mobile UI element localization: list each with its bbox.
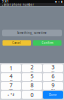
staticText: 9:41 [2,0,9,3]
staticText: 4 [9,73,12,80]
button[interactable]: 5 [22,73,42,81]
staticText: Enter phone number [4,3,34,6]
staticText: 3 [51,64,54,71]
staticText: 7 [9,81,12,89]
staticText: PQRS [9,89,13,90]
staticText: ‹ [2,2,3,7]
staticText: Confirm [42,41,53,45]
button[interactable]: 3 [43,64,63,72]
button[interactable]: 0 [22,91,42,99]
staticText: 5 [30,73,33,80]
staticText: 9 [51,81,54,89]
button[interactable]: Done [43,91,63,99]
staticText: + * # [7,93,14,97]
staticText: 2 [30,64,33,71]
staticText: ▪ ▫ ▮ [55,0,62,3]
button[interactable]: 8 [22,82,42,90]
staticText: ABC [30,71,33,73]
button[interactable]: 4 [1,73,21,81]
staticText: 6 [51,73,54,80]
staticText: JKL [31,80,33,81]
button[interactable]: 7 [1,82,21,90]
staticText: Done [49,93,57,97]
staticText: Cancel [12,41,21,45]
button[interactable]: 1 [1,64,21,72]
staticText: GHI [10,80,12,81]
staticText: MNO [51,80,54,81]
staticText: Something, sometime [17,31,47,35]
button[interactable]: Confirm [33,40,61,46]
button[interactable]: 9 [43,82,63,90]
staticText: 0 [30,91,33,98]
staticText: 8 [30,81,33,89]
staticText: 1 [9,65,12,72]
staticText: TUV [30,89,33,90]
staticText: DEF [51,71,54,73]
button[interactable]: + * # [1,91,21,99]
button[interactable]: 2 [22,64,42,72]
button[interactable]: 6 [43,73,63,81]
button[interactable]: Cancel [2,40,31,46]
staticText: WXYZ [51,89,55,90]
